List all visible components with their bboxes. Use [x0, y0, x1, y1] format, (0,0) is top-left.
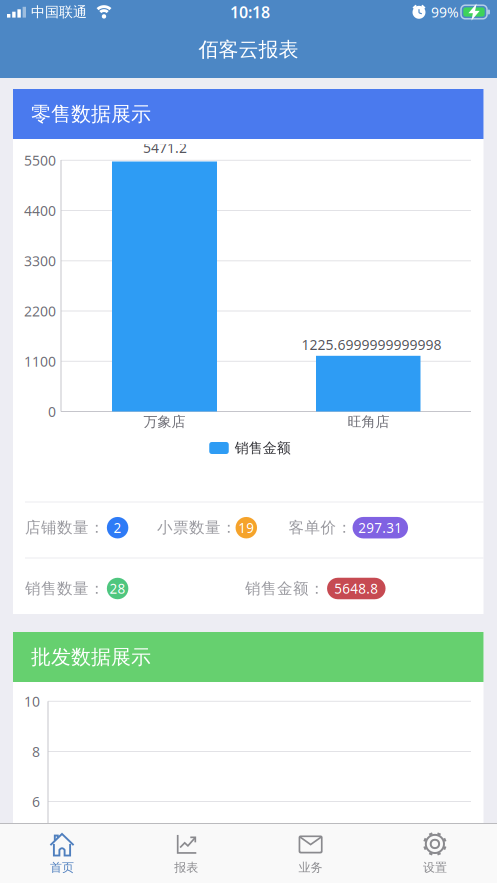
staticText: 客单价： — [288, 518, 352, 537]
staticText: 10 — [24, 692, 40, 711]
staticText: 5648.8 — [334, 579, 378, 598]
button[interactable]: 首页 — [7, 825, 117, 881]
staticText: 0 — [48, 402, 56, 421]
staticText: 业务 — [299, 860, 323, 875]
button[interactable]: 报表 — [131, 825, 241, 881]
staticText: 首页 — [50, 860, 74, 875]
staticText: 佰客云报表 — [198, 37, 298, 62]
staticText: 报表 — [174, 860, 198, 875]
staticText: 店铺数量： — [25, 518, 105, 537]
staticText: 销售数量： — [25, 579, 105, 598]
staticText: 19 — [238, 518, 254, 537]
staticText: 297.31 — [358, 518, 402, 537]
staticText: 万象店 — [143, 413, 185, 431]
staticText: 2 — [114, 518, 122, 537]
staticText: 小票数量： — [157, 518, 237, 537]
staticText: 99% — [431, 2, 459, 22]
staticText: 10:18 — [230, 1, 270, 23]
staticText: 8 — [32, 742, 40, 761]
staticText: 设置 — [423, 860, 447, 875]
staticText: 销售金额 — [235, 439, 291, 457]
staticText: 旺角店 — [347, 413, 389, 431]
staticText: 5500 — [24, 151, 56, 170]
staticText: 中国联通 — [31, 3, 87, 21]
staticText: 2200 — [24, 301, 56, 321]
staticText: 3300 — [24, 251, 56, 270]
button[interactable]: 设置 — [380, 825, 490, 881]
staticText: 批发数据展示 — [31, 644, 151, 670]
staticText: 1100 — [24, 352, 56, 371]
staticText: 销售金额： — [245, 579, 325, 598]
staticText: 28 — [110, 579, 126, 598]
staticText: 6 — [32, 792, 40, 811]
staticText: 5471.2 — [143, 138, 187, 157]
staticText: 零售数据展示 — [31, 101, 151, 127]
staticText: 1225.6999999999998 — [301, 335, 441, 354]
staticText: 4400 — [24, 201, 56, 220]
button[interactable]: 业务 — [256, 825, 366, 881]
